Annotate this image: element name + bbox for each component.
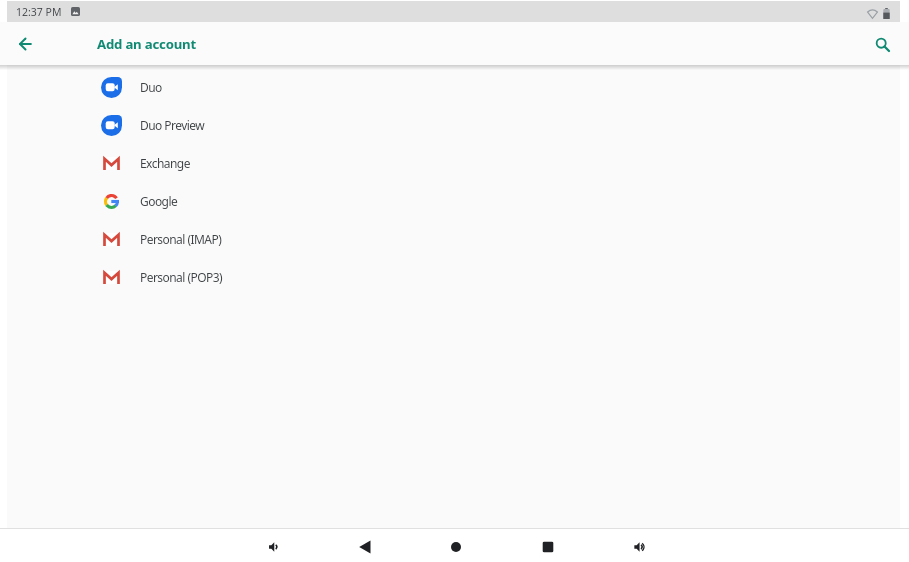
button[interactable]: Google	[0, 182, 909, 220]
staticText: Duo	[140, 79, 162, 95]
button[interactable]	[351, 533, 379, 561]
button[interactable]: Duo	[0, 68, 909, 106]
button[interactable]	[868, 30, 896, 58]
button[interactable]	[259, 533, 287, 561]
staticText: Google	[140, 193, 178, 209]
staticText: Personal (POP3)	[140, 269, 223, 285]
button[interactable]: Exchange	[0, 144, 909, 182]
button[interactable]: Duo Preview	[0, 106, 909, 144]
button[interactable]: Personal (POP3)	[0, 258, 909, 296]
button[interactable]	[625, 533, 653, 561]
staticText: Add an account	[97, 35, 196, 53]
button[interactable]	[442, 533, 470, 561]
staticText: Personal (IMAP)	[140, 231, 222, 247]
button[interactable]	[12, 30, 40, 58]
button[interactable]	[534, 533, 562, 561]
button[interactable]: Personal (IMAP)	[0, 220, 909, 258]
staticText: Exchange	[140, 155, 190, 171]
staticText: Duo Preview	[140, 117, 205, 133]
staticText: 12:37 PM	[16, 5, 62, 19]
